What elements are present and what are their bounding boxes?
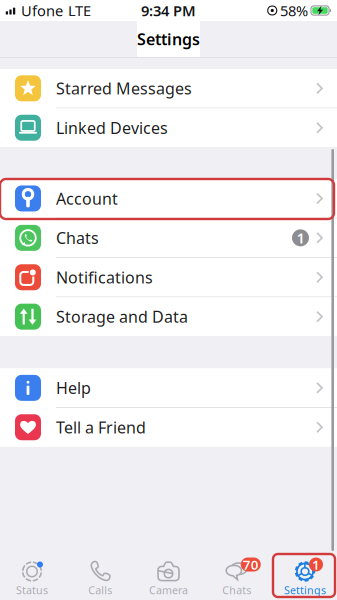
button[interactable]: 1 [275, 558, 335, 599]
staticText: Account [56, 188, 118, 209]
button[interactable]: 70 [207, 558, 267, 599]
staticText: Help [56, 377, 91, 398]
staticText: 9:34 PM [141, 1, 196, 20]
button[interactable]: Calls [70, 558, 130, 599]
staticText: Camera [149, 583, 188, 597]
button[interactable]: Chats [0, 218, 337, 257]
staticText: 1 [312, 556, 320, 573]
button[interactable]: Help [0, 368, 337, 407]
button[interactable]: Linked Devices [0, 108, 337, 147]
staticText: 58% [280, 1, 308, 20]
staticText: Ufone [21, 1, 63, 20]
staticText: Chats [56, 227, 99, 248]
button[interactable]: Status [2, 558, 62, 599]
staticText: Settings [284, 583, 326, 597]
staticText: 1 [296, 228, 304, 248]
button[interactable]: Starred Messages [0, 69, 337, 108]
staticText: LTE [68, 1, 91, 20]
staticText: Starred Messages [56, 78, 192, 99]
staticText: Linked Devices [56, 117, 168, 138]
staticText: 70 [243, 556, 259, 573]
staticText: Tell a Friend [56, 417, 146, 438]
staticText: Chats [222, 583, 251, 597]
staticText: Calls [88, 583, 112, 597]
button[interactable]: Notifications [0, 258, 337, 297]
staticText: Settings [137, 28, 200, 50]
button[interactable]: Account [0, 179, 337, 218]
staticText: Storage and Data [56, 306, 188, 327]
button[interactable]: Camera [138, 558, 198, 599]
staticText: Notifications [56, 267, 153, 288]
button[interactable]: Tell a Friend [0, 408, 337, 447]
staticText: Status [16, 583, 48, 597]
button[interactable]: Storage and Data [0, 297, 337, 336]
